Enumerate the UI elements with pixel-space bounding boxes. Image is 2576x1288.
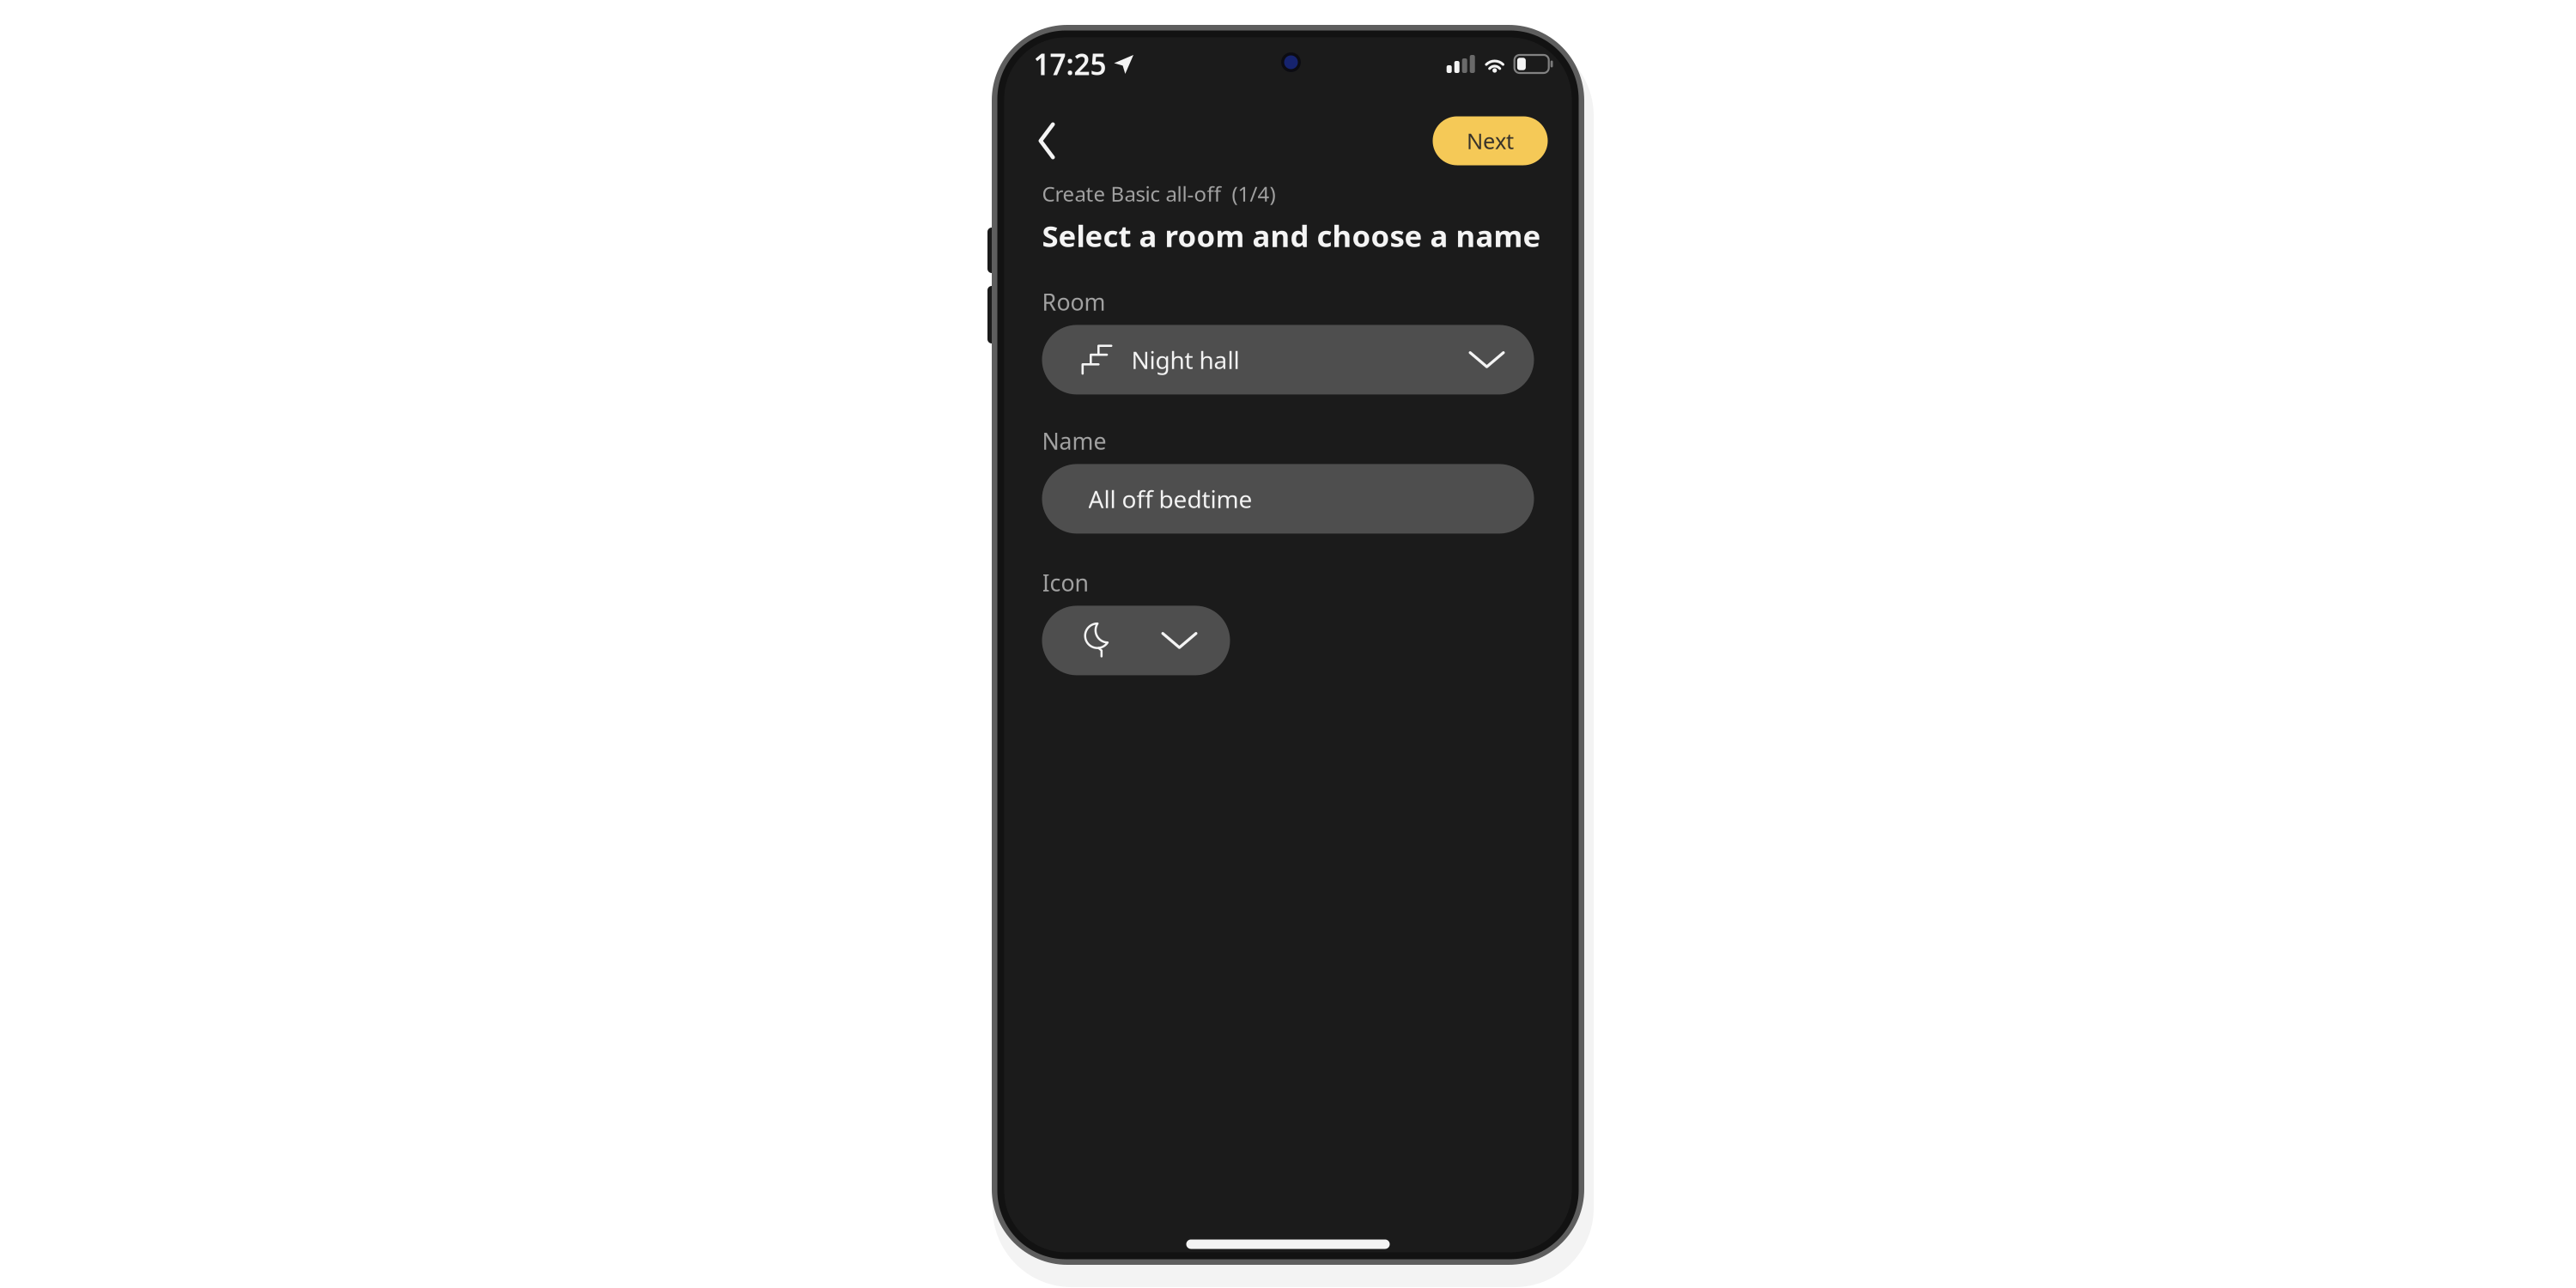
button[interactable]: Next <box>1433 116 1548 165</box>
button[interactable]: Back <box>1039 117 1077 164</box>
button[interactable]: All off bedtime <box>1042 464 1534 534</box>
staticText: Select a room and choose a name <box>1042 216 1541 255</box>
staticText: Night hall <box>1131 344 1239 376</box>
staticText: Create Basic all-off (1/4) <box>1042 180 1276 207</box>
staticText: Room <box>1042 287 1106 317</box>
staticText: Icon <box>1042 567 1088 598</box>
staticText: 17:25 <box>1033 45 1106 83</box>
button[interactable]: Choose icon: moon <box>1042 606 1230 675</box>
staticText: Next <box>1467 126 1514 155</box>
staticText: Name <box>1042 426 1106 456</box>
staticText: All off bedtime <box>1088 483 1252 515</box>
button[interactable]: Night hall <box>1042 325 1534 394</box>
